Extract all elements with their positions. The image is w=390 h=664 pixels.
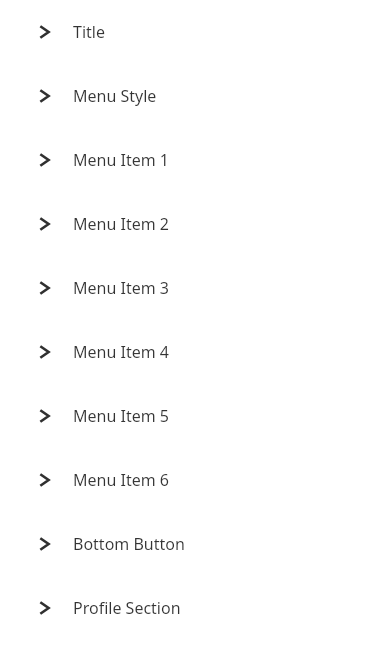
- staticText: Menu Item 2: [73, 213, 169, 235]
- other: Open Bottom Button: [36, 535, 54, 553]
- button[interactable]: Open Menu Item 1: [0, 128, 390, 192]
- button[interactable]: Open Menu Item 2: [0, 192, 390, 256]
- staticText: Profile Section: [73, 597, 181, 619]
- staticText: Bottom Button: [73, 533, 185, 555]
- staticText: Menu Item 3: [73, 277, 169, 299]
- button[interactable]: Open Menu Style: [0, 64, 390, 128]
- staticText: Title: [73, 21, 105, 43]
- button[interactable]: Open Menu Item 3: [0, 256, 390, 320]
- staticText: Menu Item 6: [73, 469, 169, 491]
- button[interactable]: Open Menu Item 6: [0, 448, 390, 512]
- staticText: Menu Item 1: [73, 149, 169, 171]
- staticText: Menu Item 5: [73, 405, 169, 427]
- button[interactable]: Open Profile Section: [0, 576, 390, 640]
- other: Open Title: [36, 23, 54, 41]
- button[interactable]: Open Menu Item 4: [0, 320, 390, 384]
- button[interactable]: Open Bottom Button: [0, 512, 390, 576]
- staticText: Menu Style: [73, 85, 157, 107]
- other: Open Menu Item 5: [36, 407, 54, 425]
- other: Open Menu Item 4: [36, 343, 54, 361]
- button[interactable]: Open Menu Item 5: [0, 384, 390, 448]
- other: Open Menu Item 3: [36, 279, 54, 297]
- other: Open Menu Style: [36, 87, 54, 105]
- button[interactable]: Open Title: [0, 0, 390, 64]
- other: Open Menu Item 6: [36, 471, 54, 489]
- other: Open Profile Section: [36, 599, 54, 617]
- other: Open Menu Item 1: [36, 151, 54, 169]
- other: Open Menu Item 2: [36, 215, 54, 233]
- staticText: Menu Item 4: [73, 341, 169, 363]
